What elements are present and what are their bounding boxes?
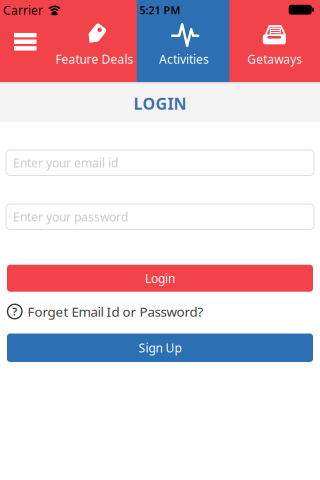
staticText: Getaways [247,51,302,67]
button[interactable]: Feature Deals [48,0,139,82]
button[interactable]: Enter your email id [6,150,314,175]
staticText: LOGIN [133,93,186,114]
button[interactable] [0,18,48,66]
staticText: Sign Up [138,340,181,356]
staticText: Feature Deals [56,51,134,67]
button[interactable]: Sign Up [7,333,313,362]
staticText: Activities [159,51,209,67]
staticText: Carrier [3,2,43,18]
staticText: 5:21 PM [139,3,180,17]
button[interactable]: Enter your password [6,204,314,229]
staticText: Enter your email id [13,155,118,171]
button[interactable]: Activities [139,0,229,82]
staticText: Forget Email Id or Password? [27,303,203,320]
button[interactable]: Login [7,265,313,292]
button[interactable]: ? [0,302,320,320]
staticText: ? [12,304,17,319]
staticText: Enter your password [13,209,128,225]
button[interactable]: Getaways [229,0,320,82]
staticText: Login [145,270,175,286]
